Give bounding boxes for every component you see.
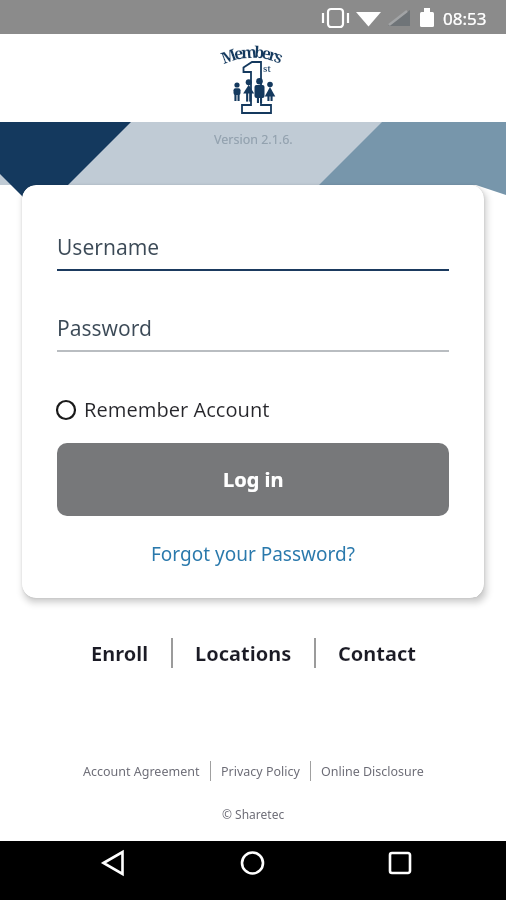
button[interactable]: Log in (57, 443, 449, 516)
button[interactable]: Forgot your Password? (151, 541, 355, 567)
staticText: Log in (223, 466, 284, 493)
staticText: e (232, 41, 246, 65)
staticText: Version 2.1.6. (214, 131, 293, 148)
staticText: b (253, 41, 266, 63)
staticText: M (218, 43, 240, 69)
staticText: Password (57, 314, 152, 343)
button[interactable]: Online Disclosure (321, 763, 424, 780)
staticText: st (263, 62, 271, 74)
button[interactable] (88, 841, 138, 900)
staticText: e (260, 41, 274, 65)
staticText: Username (57, 233, 160, 262)
staticText: m (240, 40, 258, 63)
staticText: s (271, 45, 287, 69)
staticText: © Sharetec (222, 806, 285, 822)
staticText: r (266, 43, 281, 67)
button[interactable]: Enroll (91, 640, 149, 667)
button[interactable]: Locations (195, 640, 292, 667)
button[interactable]: Privacy Policy (221, 763, 300, 780)
button[interactable] (228, 841, 278, 900)
button[interactable]: Account Agreement (83, 763, 200, 780)
button[interactable]: Remember Account (55, 396, 270, 423)
button[interactable] (375, 841, 425, 900)
staticText: 08:53 (443, 7, 487, 30)
button[interactable]: Contact (338, 640, 416, 667)
staticText: Remember Account (84, 396, 270, 423)
